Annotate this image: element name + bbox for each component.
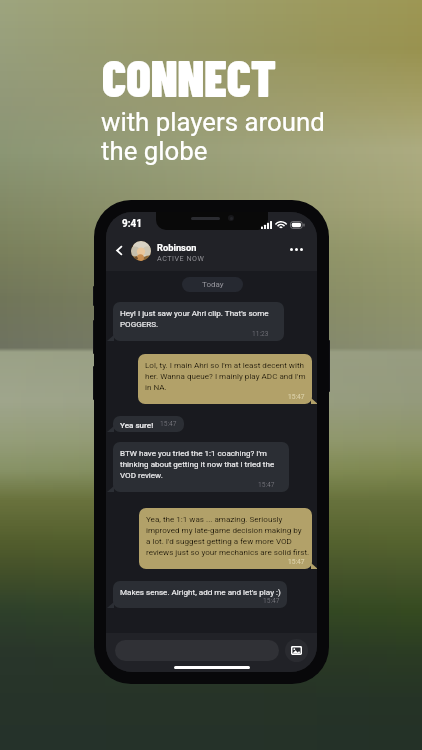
button[interactable]: Hey! I just saw your Ahri clip. That's s… (113, 302, 284, 341)
button[interactable]: Yea sure! (113, 416, 184, 432)
staticText: Makes sense. Alright, add me and let's p… (120, 587, 280, 596)
staticText: Today (202, 280, 224, 289)
staticText: Robinson (157, 242, 197, 253)
staticText: 11:23 (252, 330, 269, 338)
staticText: 15:47 (160, 420, 177, 428)
staticText: 15:47 (258, 481, 275, 489)
staticText: Yea sure! (120, 420, 154, 429)
button[interactable]: Back (111, 242, 128, 259)
staticText: Yea, the 1:1 was ... amazing. Seriously … (146, 514, 305, 557)
staticText: Hey! I just saw your Ahri clip. That's s… (120, 308, 269, 329)
staticText: 15:47 (263, 597, 280, 605)
staticText: 15:47 (288, 558, 305, 566)
staticText: ACTIVE NOW (157, 254, 205, 262)
button[interactable]: Yea, the 1:1 was ... amazing. Seriously … (139, 508, 312, 569)
staticText: Lol, ty. I main Ahri so I'm at least dec… (145, 360, 305, 392)
staticText: 15:47 (288, 393, 305, 401)
button[interactable]: Lol, ty. I main Ahri so I'm at least dec… (138, 354, 312, 404)
staticText: 9:41 (122, 218, 143, 230)
button[interactable]: Attach image (285, 639, 308, 662)
button[interactable]: More options (285, 238, 307, 260)
staticText: BTW have you tried the 1:1 coaching? I'm… (120, 448, 275, 480)
button[interactable]: BTW have you tried the 1:1 coaching? I'm… (113, 442, 289, 492)
button[interactable]: Makes sense. Alright, add me and let's p… (113, 581, 287, 608)
staticText: with players around the globe (101, 107, 325, 167)
button[interactable]: Today (182, 277, 243, 292)
staticText: CONNECT (102, 46, 277, 107)
